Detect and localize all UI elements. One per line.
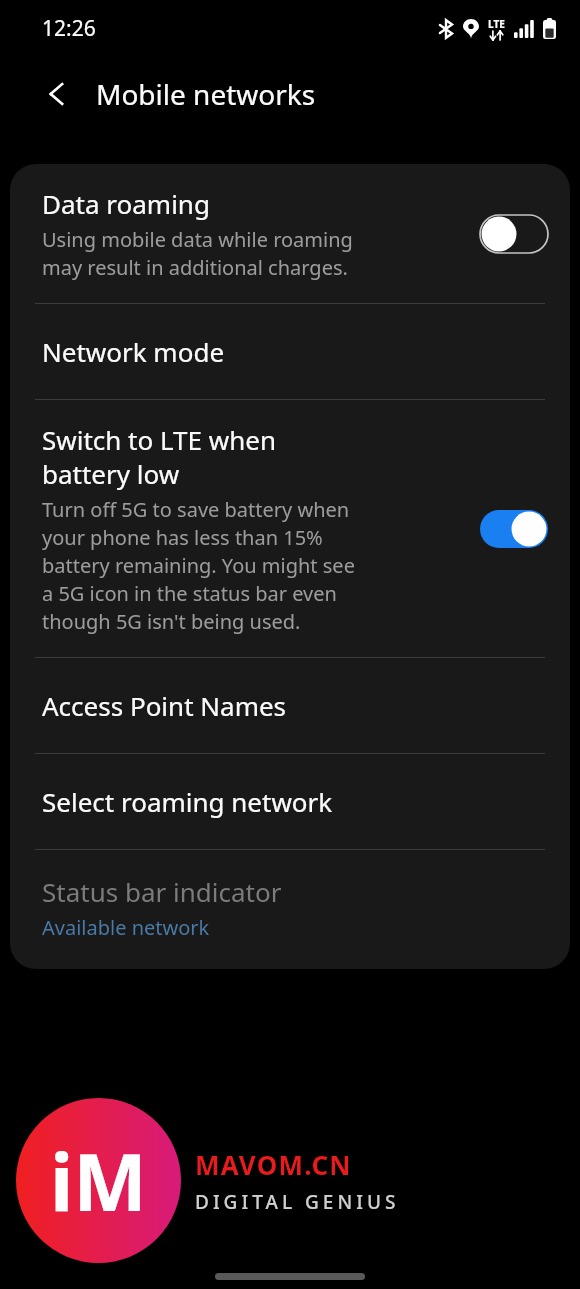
button[interactable]: Switch to LTE when battery low (10, 400, 570, 657)
staticText: Switch to LTE when battery low (42, 422, 277, 491)
staticText: DIGITAL GENIUS (195, 1189, 400, 1215)
staticText: Access Point Names (42, 688, 287, 723)
staticText: Network mode (42, 334, 225, 369)
staticText: Select roaming network (42, 784, 333, 819)
staticText: 12:26 (42, 14, 96, 43)
staticText: MAVOM.CN (195, 1147, 352, 1182)
button[interactable]: Back (26, 63, 88, 125)
staticText: iM (50, 1128, 147, 1234)
staticText: LTE (488, 17, 505, 31)
button[interactable]: On (480, 510, 548, 548)
staticText: Available network (42, 914, 210, 941)
button[interactable]: Access Point Names (10, 658, 570, 753)
button[interactable]: Select roaming network (10, 754, 570, 849)
staticText: Data roaming (42, 186, 210, 221)
staticText: Status bar indicator (42, 874, 282, 909)
staticText: Mobile networks (96, 75, 316, 113)
button[interactable]: Status bar indicator (10, 850, 570, 969)
button[interactable]: Data roaming (10, 164, 570, 303)
staticText: Using mobile data while roaming may resu… (42, 226, 353, 281)
button[interactable]: Off (480, 215, 548, 253)
button[interactable]: Network mode (10, 304, 570, 399)
staticText: Turn off 5G to save battery when your ph… (42, 496, 355, 635)
